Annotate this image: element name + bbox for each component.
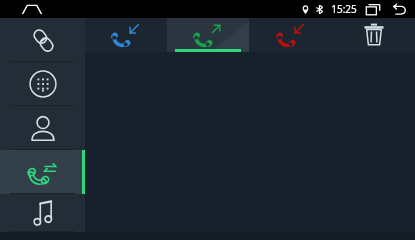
button[interactable]: Home xyxy=(22,3,42,15)
button[interactable]: Back xyxy=(391,4,407,15)
button[interactable]: Outgoing calls xyxy=(167,18,249,52)
button[interactable]: Dial pad xyxy=(0,62,85,106)
button[interactable]: Missed calls xyxy=(249,18,332,52)
button[interactable]: Bluetooth pairing xyxy=(0,18,85,62)
button[interactable]: Call log xyxy=(0,150,85,194)
button[interactable]: Incoming calls xyxy=(85,18,167,52)
button[interactable]: Delete call log xyxy=(332,18,415,52)
button[interactable]: Music xyxy=(0,194,85,232)
staticText: 15:25 xyxy=(331,2,357,16)
button[interactable]: Recents xyxy=(366,4,380,15)
button[interactable]: Contacts xyxy=(0,106,85,150)
